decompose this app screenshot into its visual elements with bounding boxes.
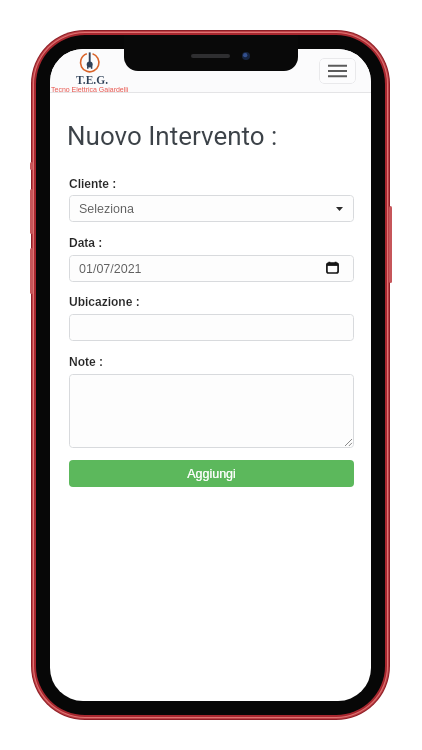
staticText: Ubicazione : <box>69 295 140 308</box>
button[interactable]: 01/07/2021 <box>69 255 354 282</box>
button[interactable]: Menu <box>319 58 356 84</box>
staticText: Nuovo Intervento : <box>67 121 278 151</box>
staticText: 01/07/2021 <box>79 262 142 276</box>
staticText: Data : <box>69 236 103 249</box>
button[interactable]: Seleziona <box>69 195 354 222</box>
button[interactable] <box>69 314 354 341</box>
button[interactable] <box>69 374 354 448</box>
staticText: Cliente : <box>69 177 117 190</box>
staticText: Note : <box>69 355 103 368</box>
staticText: T.E.G. <box>76 74 109 87</box>
staticText: Aggiungi <box>187 467 236 481</box>
staticText: Tecno Elettrica Gaiardelli <box>51 86 129 94</box>
button[interactable]: Aggiungi <box>69 460 354 487</box>
staticText: Seleziona <box>79 202 134 216</box>
